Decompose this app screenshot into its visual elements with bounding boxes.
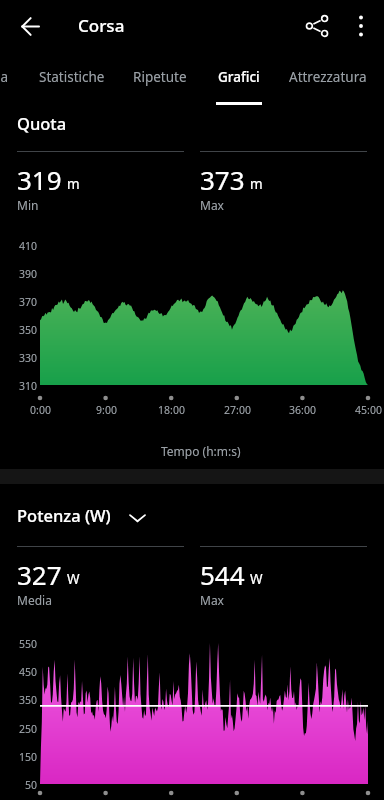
staticText: 250: [18, 722, 37, 736]
staticText: 373: [200, 162, 245, 197]
staticText: Statistiche: [39, 68, 105, 86]
staticText: 9:00: [96, 403, 117, 417]
button[interactable]: Attrezzatura: [273, 54, 383, 104]
staticText: Ripetute: [133, 68, 187, 86]
staticText: 50: [24, 778, 37, 792]
staticText: m: [250, 175, 263, 193]
staticText: 319: [17, 162, 62, 197]
staticText: Corsa: [78, 14, 125, 37]
staticText: 36:00: [289, 403, 316, 417]
staticText: 550: [18, 637, 37, 651]
staticText: Max: [200, 592, 224, 608]
staticText: Quota: [17, 112, 67, 134]
staticText: 410: [18, 239, 37, 253]
staticText: 390: [18, 267, 37, 281]
button[interactable]: More options: [342, 7, 380, 45]
staticText: m: [67, 175, 80, 193]
staticText: 350: [18, 323, 37, 337]
staticText: 150: [18, 750, 37, 764]
staticText: Media: [17, 592, 52, 608]
button[interactable]: Ripetute: [117, 54, 203, 104]
button[interactable]: Statistiche: [20, 54, 123, 104]
staticText: 330: [18, 351, 37, 365]
button[interactable]: Back: [11, 7, 49, 45]
button[interactable]: Grafici: [201, 54, 276, 104]
staticText: Max: [200, 197, 224, 213]
staticText: 310: [18, 379, 37, 393]
button[interactable]: Expand Potenza: [122, 502, 152, 532]
staticText: Attrezzatura: [289, 68, 367, 86]
staticText: 370: [18, 295, 37, 309]
staticText: Min: [17, 197, 39, 213]
staticText: 450: [18, 665, 37, 679]
staticText: W: [250, 570, 263, 588]
staticText: 0:00: [30, 403, 51, 417]
staticText: 327: [17, 557, 62, 592]
staticText: 544: [200, 557, 245, 592]
staticText: ca: [0, 68, 9, 86]
staticText: W: [67, 570, 80, 588]
staticText: Tempo (h:m:s): [161, 443, 241, 459]
staticText: 18:00: [158, 403, 185, 417]
staticText: 45:00: [355, 403, 382, 417]
button[interactable]: Share: [298, 7, 336, 45]
staticText: 350: [18, 693, 37, 707]
staticText: Potenza (W): [17, 504, 111, 526]
staticText: Grafici: [218, 68, 260, 86]
button[interactable]: ca: [0, 54, 25, 104]
staticText: 27:00: [224, 403, 251, 417]
